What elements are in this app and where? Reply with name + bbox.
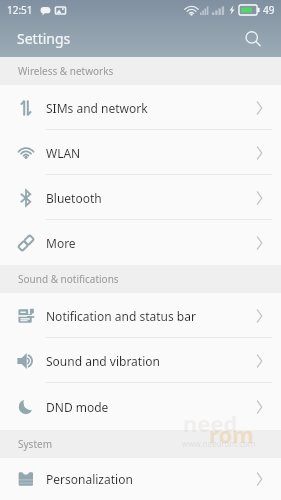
button[interactable]: DND mode bbox=[0, 383, 281, 430]
staticText: www.needrom.com bbox=[182, 438, 256, 449]
staticText: Settings bbox=[17, 29, 71, 48]
button[interactable]: Notification and status bar bbox=[0, 293, 281, 338]
button[interactable]: Search bbox=[234, 20, 271, 57]
button[interactable]: SIMs and network bbox=[0, 85, 281, 130]
staticText: Wireless & networks bbox=[18, 64, 114, 78]
staticText: need bbox=[183, 408, 238, 438]
button[interactable]: Sound and vibration bbox=[0, 338, 281, 383]
staticText: rom bbox=[209, 419, 254, 449]
staticText: DND mode bbox=[46, 399, 109, 415]
staticText: Personalization bbox=[46, 471, 133, 487]
staticText: 49 bbox=[263, 3, 275, 17]
staticText: WLAN bbox=[46, 145, 81, 161]
button[interactable]: Personalization bbox=[0, 458, 281, 500]
staticText: Sound and vibration bbox=[46, 353, 160, 369]
staticText: 12:51 bbox=[7, 3, 33, 17]
button[interactable]: More bbox=[0, 220, 281, 265]
staticText: Bluetooth bbox=[46, 190, 102, 206]
button[interactable]: Bluetooth bbox=[0, 175, 281, 220]
staticText: System bbox=[18, 437, 52, 451]
staticText: Sound & notifications bbox=[18, 272, 119, 286]
staticText: More bbox=[46, 235, 76, 251]
button[interactable]: WLAN bbox=[0, 130, 281, 175]
staticText: Notification and status bar bbox=[46, 308, 196, 324]
staticText: SIMs and network bbox=[46, 100, 148, 116]
